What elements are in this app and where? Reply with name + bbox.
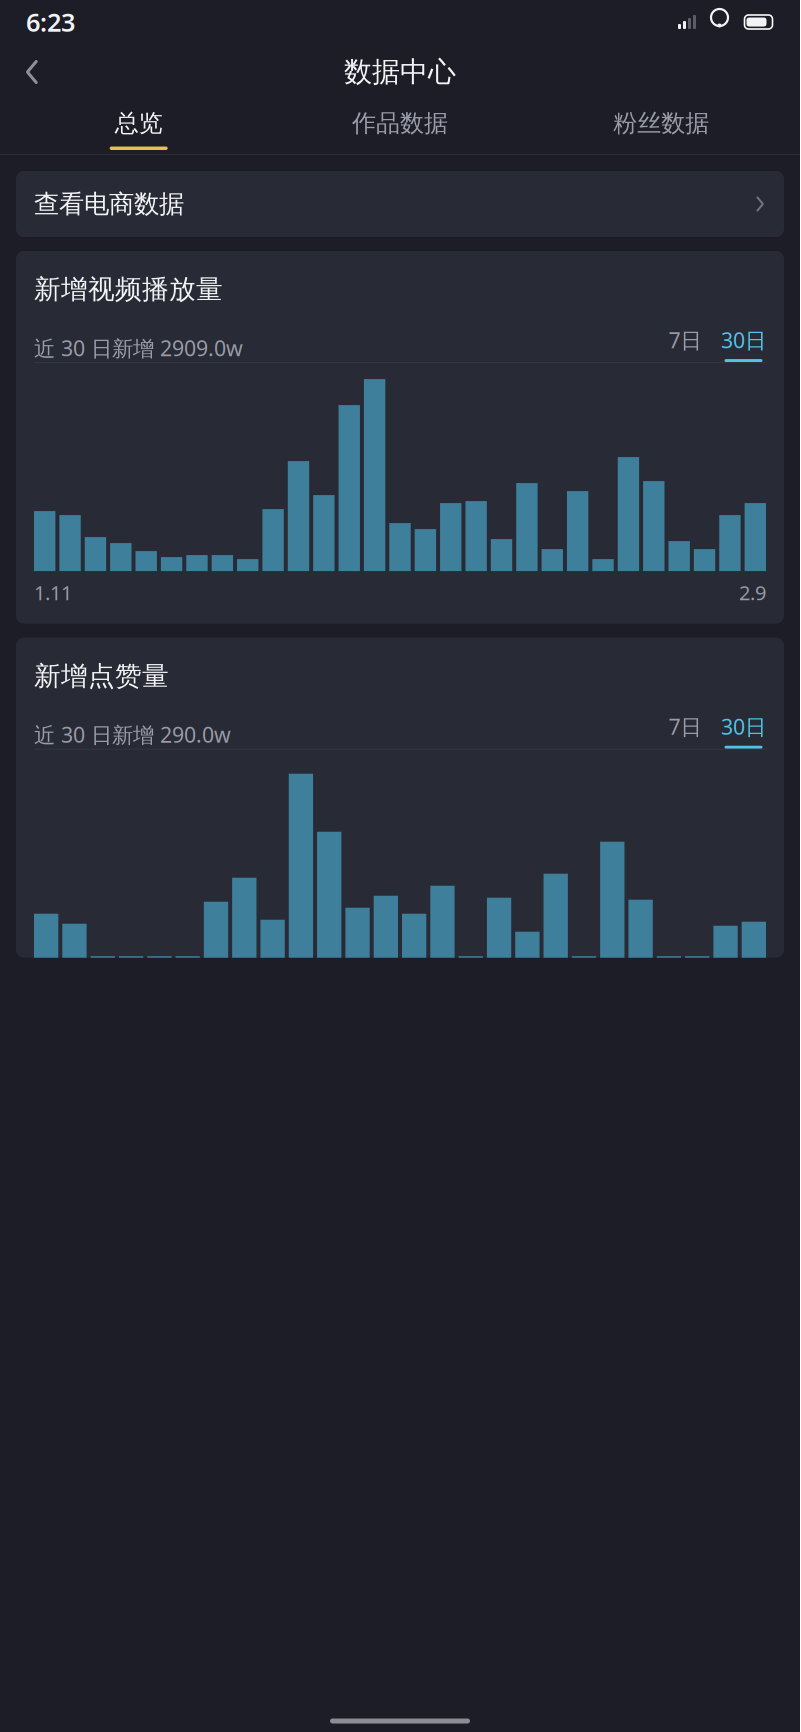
staticText: 总览 (115, 108, 163, 138)
button[interactable]: 作品数据 (269, 100, 531, 154)
button[interactable]: 粉丝数据 (531, 100, 792, 154)
staticText: 数据中心 (344, 55, 456, 89)
staticText: 近 30 日新增 2909.0w (34, 334, 243, 362)
staticText: 30日 (721, 712, 766, 741)
staticText: 30日 (721, 326, 766, 354)
staticText: 6:23 (26, 5, 75, 39)
staticText: 查看电商数据 (34, 188, 184, 219)
staticText: 新增点赞量 (34, 660, 169, 692)
staticText: 作品数据 (352, 108, 448, 138)
staticText: 1.11 (34, 579, 72, 606)
button[interactable]: Back (8, 50, 56, 94)
button[interactable]: 30日 (721, 326, 766, 362)
button[interactable]: 查看电商数据 (16, 171, 784, 237)
staticText: 新增视频播放量 (34, 273, 223, 306)
button[interactable]: 7日 (667, 712, 703, 749)
staticText: 粉丝数据 (613, 108, 709, 138)
staticText: 7日 (668, 326, 701, 354)
button[interactable]: 总览 (8, 100, 269, 154)
staticText: 近 30 日新增 290.0w (34, 720, 231, 749)
staticText: 7日 (668, 712, 701, 741)
button[interactable]: 7日 (667, 326, 703, 362)
staticText: 2.9 (739, 579, 766, 606)
button[interactable]: 30日 (721, 712, 766, 749)
